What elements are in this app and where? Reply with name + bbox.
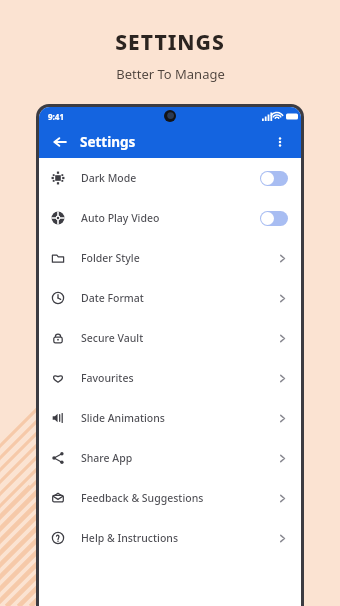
button[interactable]: Share App xyxy=(39,438,301,478)
staticText: Date Format xyxy=(81,291,144,305)
staticText: Favourites xyxy=(81,371,134,385)
button[interactable]: Date Format xyxy=(39,278,301,318)
button[interactable]: Back xyxy=(49,131,71,153)
button[interactable]: More options xyxy=(269,131,291,153)
staticText: SETTINGS xyxy=(115,28,225,57)
button[interactable]: Help & Instructions xyxy=(39,518,301,558)
button[interactable]: Favourites xyxy=(39,358,301,398)
staticText: Better To Manage xyxy=(116,65,225,83)
staticText: Settings xyxy=(80,133,136,151)
staticText: Dark Mode xyxy=(81,171,137,185)
button[interactable]: Slide Animations xyxy=(39,398,301,438)
staticText: Secure Vault xyxy=(81,331,144,345)
staticText: Folder Style xyxy=(81,251,140,265)
staticText: 9:41 xyxy=(48,111,64,122)
staticText: Share App xyxy=(81,451,133,465)
button[interactable]: Secure Vault xyxy=(39,318,301,358)
staticText: Help & Instructions xyxy=(81,531,178,545)
staticText: Slide Animations xyxy=(81,411,165,425)
staticText: Auto Play Video xyxy=(81,211,160,225)
button[interactable]: Folder Style xyxy=(39,238,301,278)
button[interactable]: Dark Mode xyxy=(39,158,301,198)
button[interactable]: Feedback & Suggestions xyxy=(39,478,301,518)
button[interactable]: Auto Play Video xyxy=(39,198,301,238)
staticText: Feedback & Suggestions xyxy=(81,491,204,505)
